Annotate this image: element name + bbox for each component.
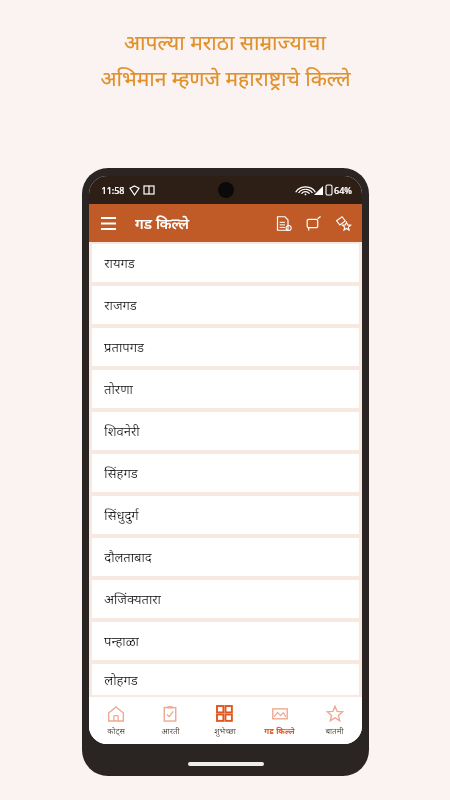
button[interactable]: बातमी: [307, 697, 362, 744]
button[interactable]: शिवनेरी: [92, 412, 359, 450]
staticText: सिंहगड: [104, 464, 138, 482]
button[interactable]: सिंहगड: [92, 454, 359, 492]
button[interactable]: Feedback: [298, 208, 328, 238]
staticText: सिंधुदुर्ग: [104, 506, 139, 524]
staticText: राजगड: [104, 296, 137, 314]
staticText: आपल्या मराठा साम्राज्याचा: [124, 28, 326, 57]
staticText: अजिंक्यतारा: [104, 590, 161, 608]
staticText: गड किल्ले: [264, 725, 295, 736]
button[interactable]: लोहगड: [92, 664, 359, 695]
staticText: बातमी: [325, 725, 344, 736]
button[interactable]: Menu: [89, 204, 127, 242]
button[interactable]: तोरणा: [92, 370, 359, 408]
staticText: कोट्स: [107, 725, 125, 736]
staticText: 11:58: [101, 184, 125, 196]
button[interactable]: प्रतापगड: [92, 328, 359, 366]
button[interactable]: रायगड: [92, 244, 359, 282]
staticText: शिवनेरी: [104, 422, 140, 440]
button[interactable]: अजिंक्यतारा: [92, 580, 359, 618]
button[interactable]: गड किल्ले: [252, 697, 307, 744]
staticText: प्रतापगड: [104, 338, 144, 356]
staticText: गड किल्ले: [135, 213, 189, 233]
button[interactable]: राजगड: [92, 286, 359, 324]
button[interactable]: शुभेच्छा: [197, 697, 252, 744]
staticText: आरती: [161, 725, 180, 736]
button[interactable]: पन्हाळा: [92, 622, 359, 660]
staticText: रायगड: [104, 254, 135, 272]
staticText: अभिमान म्हणजे महाराष्ट्राचे किल्ले: [100, 64, 351, 93]
staticText: तोरणा: [104, 380, 133, 398]
button[interactable]: आरती: [143, 697, 197, 744]
button[interactable]: सिंधुदुर्ग: [92, 496, 359, 534]
staticText: 64%: [334, 184, 352, 196]
staticText: दौलताबाद: [104, 548, 152, 566]
staticText: शुभेच्छा: [214, 725, 236, 736]
staticText: लोहगड: [104, 671, 138, 689]
button[interactable]: Favorites: [328, 208, 358, 238]
staticText: पन्हाळा: [104, 632, 139, 650]
button[interactable]: Notes: [268, 208, 298, 238]
button[interactable]: कोट्स: [89, 697, 143, 744]
button[interactable]: दौलताबाद: [92, 538, 359, 576]
